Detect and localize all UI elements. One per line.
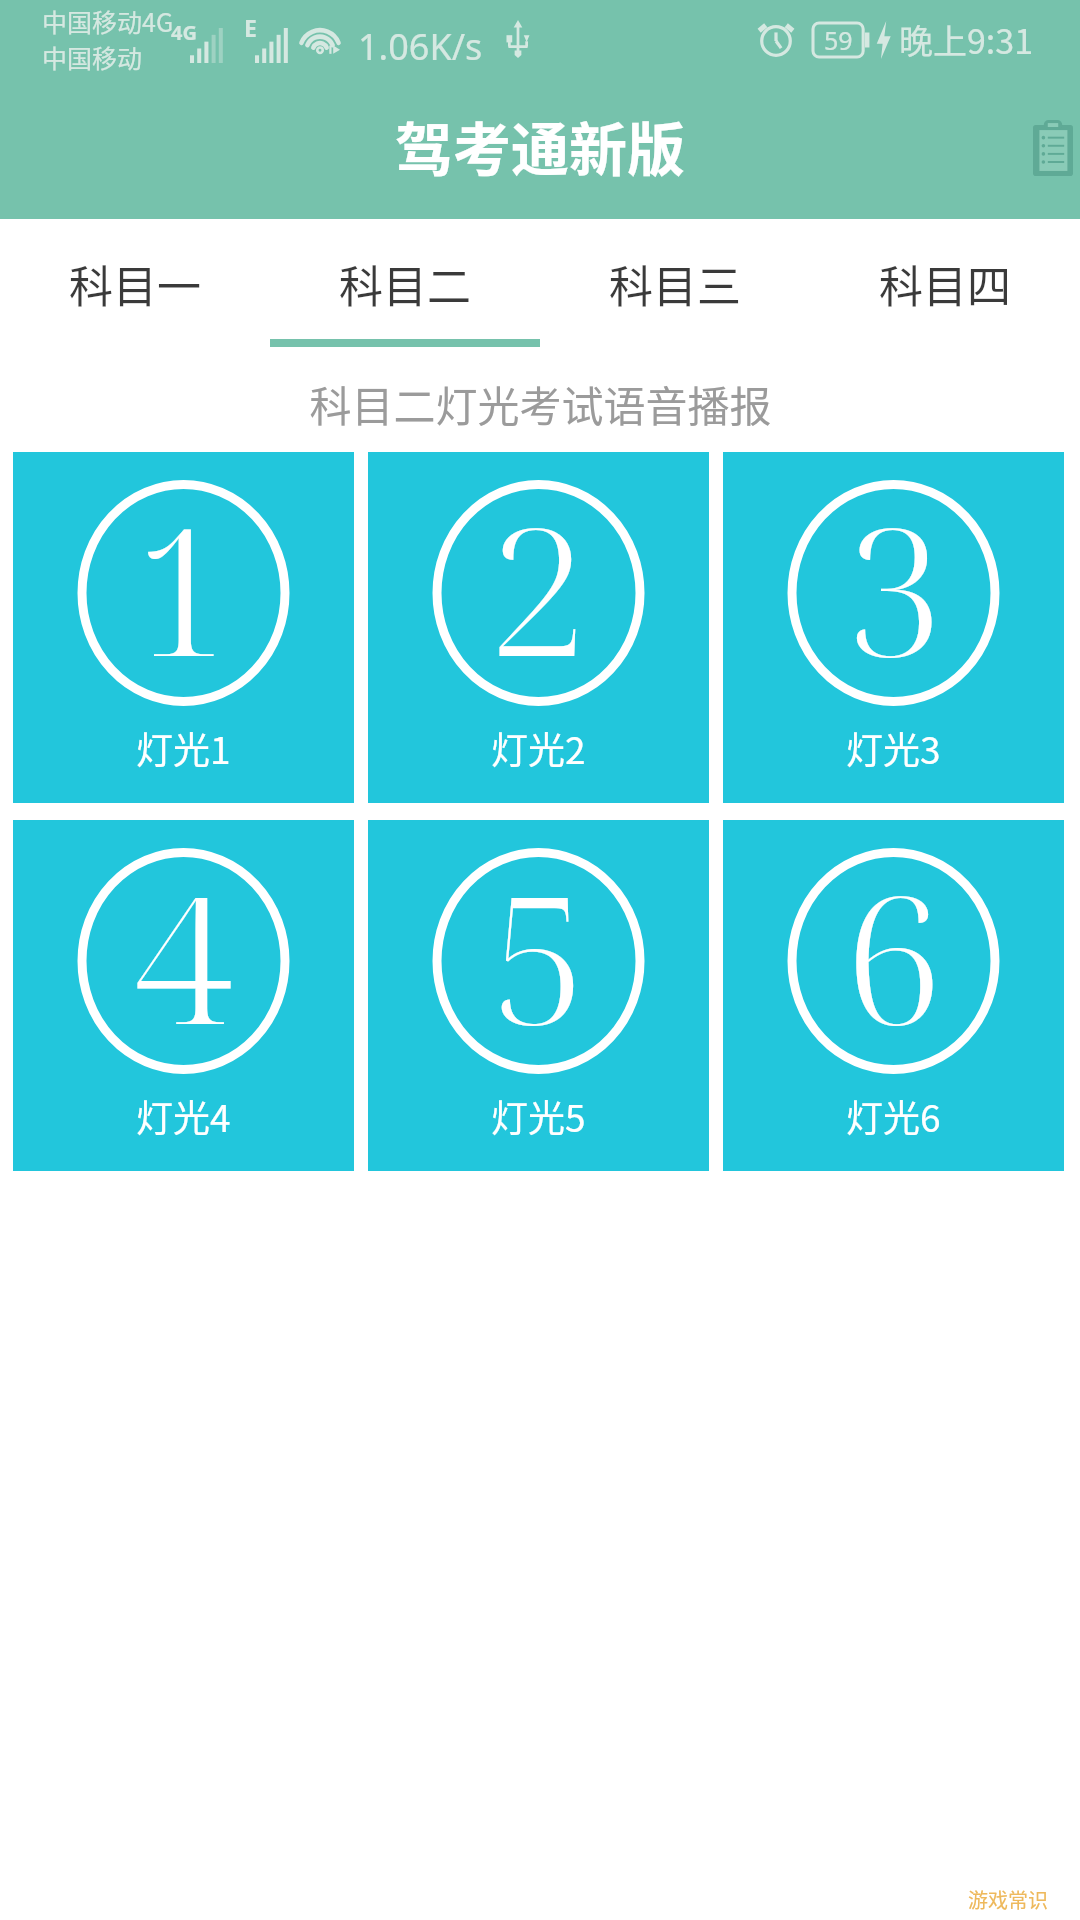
staticText: 灯光3	[846, 721, 941, 775]
staticText: 科目一	[69, 252, 201, 316]
button[interactable]: 3	[723, 452, 1064, 803]
staticText: 灯光6	[846, 1089, 941, 1143]
staticText: 中国移动4G	[42, 3, 174, 39]
staticText: 晚上9:31	[899, 15, 1034, 64]
button[interactable]: 科目二	[270, 224, 540, 344]
staticText: 科目二	[339, 252, 471, 316]
staticText: 2	[489, 467, 588, 708]
staticText: 3	[844, 467, 943, 708]
button[interactable]: 科目三	[540, 224, 810, 344]
staticText: 灯光2	[491, 721, 586, 775]
button[interactable]: 1	[13, 452, 354, 803]
button[interactable]: 科目四	[810, 224, 1080, 344]
staticText: 灯光1	[136, 721, 231, 775]
staticText: 1.06K/s	[358, 22, 483, 71]
staticText: 4G	[171, 19, 197, 46]
button[interactable]: 科目一	[0, 224, 270, 344]
staticText: 科目三	[609, 252, 741, 316]
staticText: 科目四	[879, 252, 1011, 316]
button[interactable]: 4	[13, 820, 354, 1171]
staticText: 59	[824, 23, 853, 57]
staticText: 6	[844, 835, 943, 1076]
staticText: 1	[134, 467, 233, 708]
staticText: 科目二灯光考试语音播报	[309, 373, 772, 434]
staticText: 4	[134, 835, 233, 1076]
button[interactable]: Exam record	[1013, 110, 1080, 186]
staticText: 5	[489, 835, 588, 1076]
staticText: 灯光4	[136, 1089, 231, 1143]
staticText: E	[244, 12, 257, 43]
staticText: 中国移动	[42, 39, 143, 75]
button[interactable]: 5	[368, 820, 709, 1171]
button[interactable]: 6	[723, 820, 1064, 1171]
staticText: 驾考通新版	[395, 104, 686, 188]
button[interactable]: 2	[368, 452, 709, 803]
staticText: 灯光5	[491, 1089, 586, 1143]
staticText: 游戏常识	[968, 1885, 1048, 1914]
